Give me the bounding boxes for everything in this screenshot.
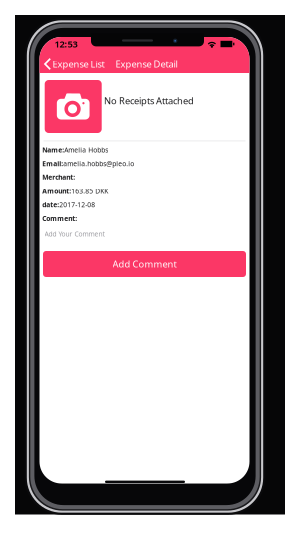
staticText: Amount: xyxy=(42,186,71,195)
button[interactable]: Expense List xyxy=(39,56,108,71)
staticText: 12:53 xyxy=(54,38,77,50)
staticText: Name: xyxy=(42,145,64,154)
button[interactable]: Add Your Comment xyxy=(44,227,244,241)
staticText: Expense List xyxy=(53,58,105,70)
staticText: Email: xyxy=(42,159,63,168)
staticText: Expense Detail xyxy=(116,58,178,70)
staticText: No Receipts Attached xyxy=(104,94,194,107)
staticText: Comment: xyxy=(42,214,77,223)
staticText: Add Comment xyxy=(112,258,176,270)
staticText: Amelia Hobbs xyxy=(64,145,108,154)
staticText: amelia.hobbs@pleo.io xyxy=(63,159,134,168)
staticText: Merchant: xyxy=(42,173,75,182)
button[interactable]: Expense Detail xyxy=(116,56,178,71)
staticText: date: xyxy=(42,200,59,209)
staticText: 2017-12-08 xyxy=(59,200,95,209)
staticText: 163.85 DKK xyxy=(71,186,108,195)
button[interactable]: Attach receipt xyxy=(45,80,102,133)
button[interactable]: Add Comment xyxy=(43,251,246,277)
staticText: Add Your Comment xyxy=(44,230,104,238)
